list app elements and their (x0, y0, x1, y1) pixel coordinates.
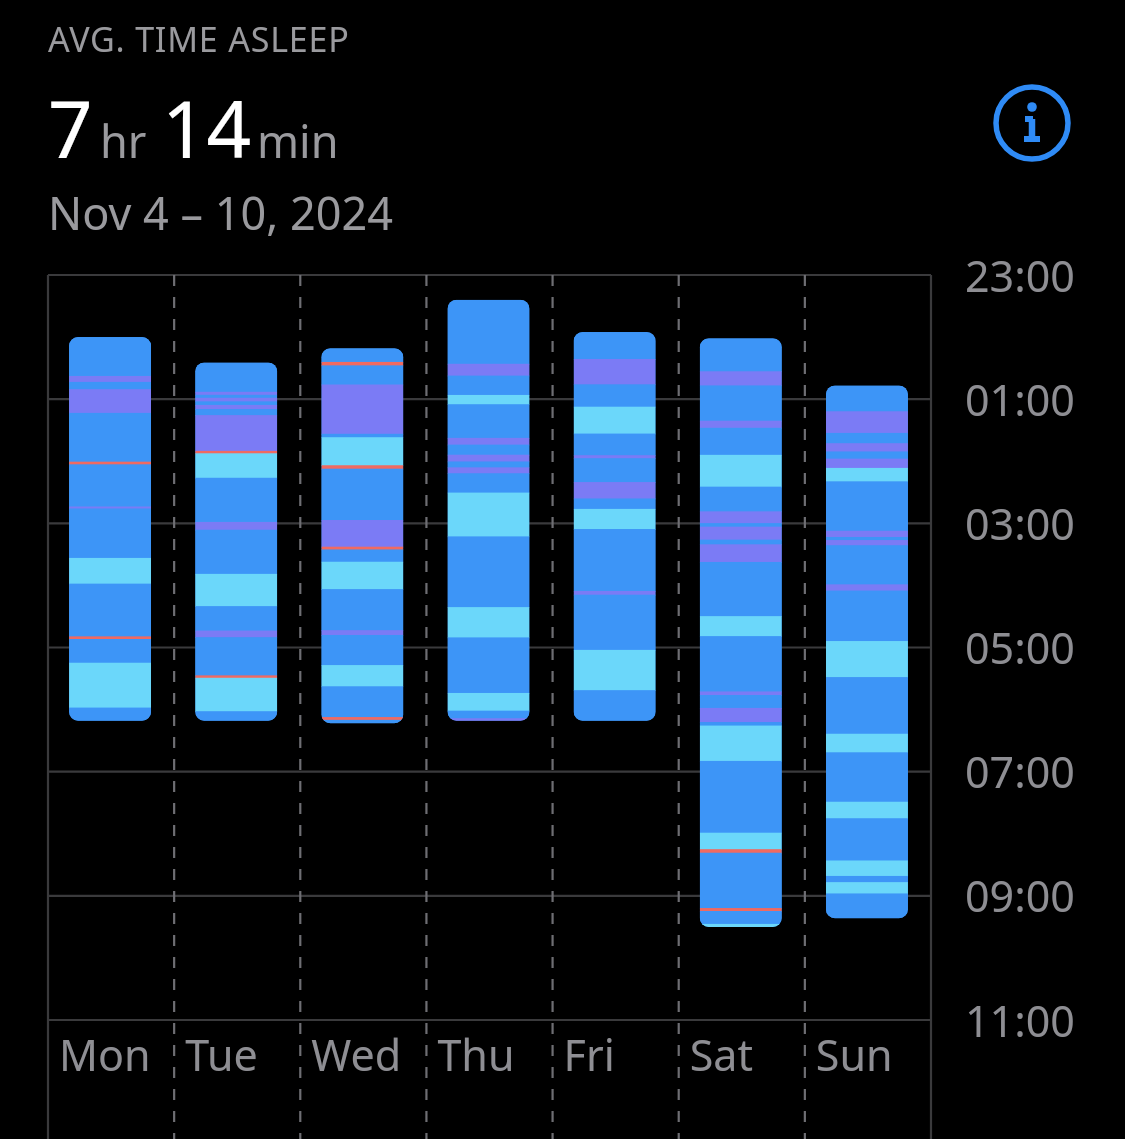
button[interactable]: About average time asleep (0, 0, 1125, 1139)
